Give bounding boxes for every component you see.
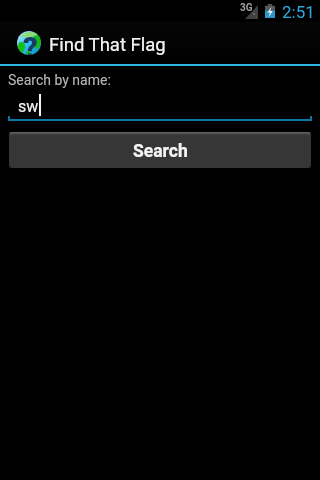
button[interactable]: Search by name text field xyxy=(8,94,312,121)
staticText: Search by name: xyxy=(8,72,111,88)
staticText: Search xyxy=(133,141,188,162)
other: Find That Flag xyxy=(17,31,41,55)
staticText: 2:51 xyxy=(282,2,315,22)
button[interactable]: Find That Flag xyxy=(0,22,320,64)
staticText: ? xyxy=(23,31,38,55)
staticText: Find That Flag xyxy=(49,34,166,56)
button[interactable]: Search xyxy=(9,132,311,168)
staticText: 3G xyxy=(240,2,253,14)
staticText: sw xyxy=(18,97,39,116)
